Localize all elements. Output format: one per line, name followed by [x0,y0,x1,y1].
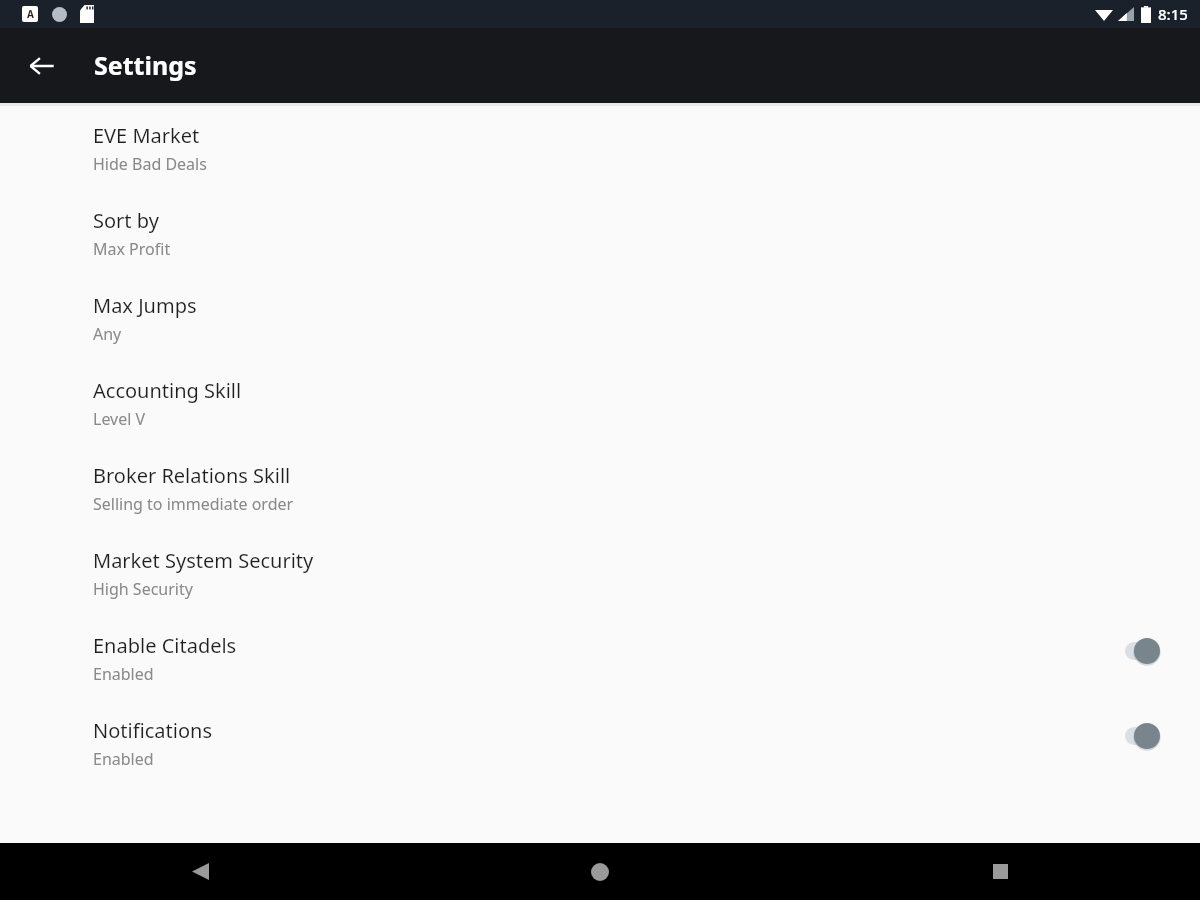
button[interactable]: Sort by [0,200,1200,285]
button[interactable]: Notifications [0,710,1200,795]
button[interactable]: Recent apps [800,843,1200,900]
staticText: High Security [93,578,193,600]
button[interactable]: Toggle Enable Citadels [1120,631,1176,671]
button[interactable]: EVE Market [0,115,1200,200]
button[interactable]: Max Jumps [0,285,1200,370]
staticText: Settings [94,48,197,82]
staticText: Max Jumps [93,292,197,319]
button[interactable]: Market System Security [0,540,1200,625]
staticText: Max Profit [93,238,171,260]
staticText: Accounting Skill [93,377,242,404]
staticText: Selling to immediate order [93,493,294,515]
staticText: Enabled [93,663,154,685]
staticText: Notifications [93,717,212,744]
button[interactable]: Broker Relations Skill [0,455,1200,540]
button[interactable]: Enable Citadels [0,625,1200,710]
staticText: EVE Market [93,122,200,149]
staticText: Enable Citadels [93,632,237,659]
staticText: Broker Relations Skill [93,462,291,489]
staticText: Enabled [93,748,154,770]
button[interactable]: Accounting Skill [0,370,1200,455]
staticText: A [27,7,34,21]
staticText: 8:15 [1158,4,1188,24]
button[interactable]: Toggle Notifications [1120,716,1176,756]
staticText: Sort by [93,207,159,234]
button[interactable]: Back [18,42,66,90]
staticText: Any [93,323,122,345]
button[interactable]: Home [400,843,800,900]
staticText: Market System Security [93,547,314,574]
button[interactable]: Back [0,843,400,900]
staticText: Hide Bad Deals [93,153,207,175]
staticText: Level V [93,408,146,430]
